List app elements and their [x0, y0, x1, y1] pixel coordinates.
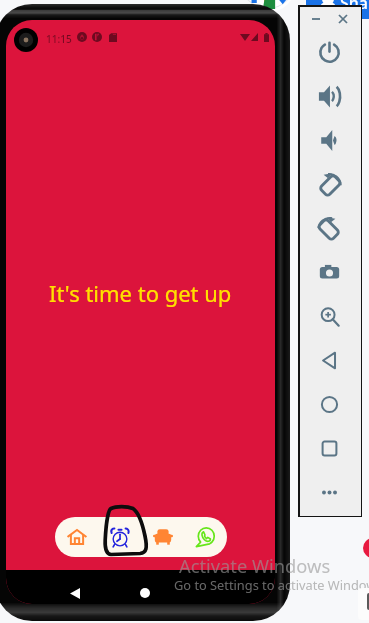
- button[interactable]: Rotate right: [314, 169, 344, 199]
- staticText: Shar: [340, 0, 369, 14]
- button[interactable]: Minimize: [307, 10, 325, 28]
- button[interactable]: Volume down: [314, 125, 344, 155]
- button[interactable]: Alarm: [98, 517, 141, 557]
- button[interactable]: Home: [314, 389, 344, 419]
- button[interactable]: Recents: [200, 580, 226, 604]
- button[interactable]: Home: [132, 580, 158, 604]
- button[interactable]: Back: [62, 580, 88, 604]
- button[interactable]: Home: [55, 517, 98, 557]
- button[interactable]: Rotate left: [314, 213, 344, 243]
- staticText: Activate Windows: [179, 553, 331, 578]
- staticText: It's time to get up: [49, 278, 232, 308]
- button[interactable]: Overview: [314, 433, 344, 463]
- button[interactable]: Power: [314, 37, 344, 67]
- button[interactable]: Car: [141, 517, 184, 557]
- button[interactable]: Zoom in: [314, 301, 344, 331]
- staticText: 11:15: [46, 32, 72, 46]
- button[interactable]: Volume up: [314, 81, 344, 111]
- button[interactable]: Back: [314, 345, 344, 375]
- button[interactable]: Close: [334, 10, 352, 28]
- button[interactable]: Screenshot: [314, 257, 344, 287]
- button[interactable]: WhatsApp: [184, 517, 227, 557]
- button[interactable]: More: [314, 477, 344, 507]
- staticText: Go to Settings to activate Windows: [174, 576, 369, 593]
